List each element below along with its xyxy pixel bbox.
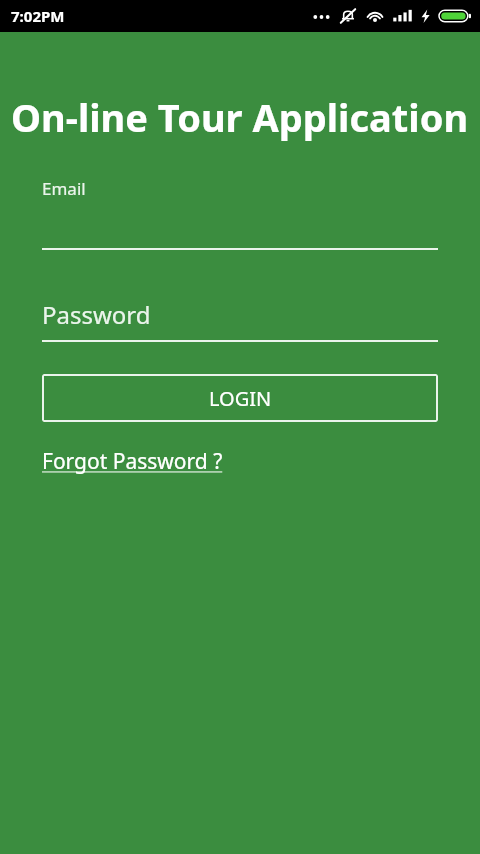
button[interactable]: Password (42, 294, 438, 342)
staticText: Email (42, 177, 86, 200)
staticText: 7:02PM (11, 6, 65, 26)
staticText: On-line Tour Application (11, 91, 469, 143)
button[interactable]: Email (42, 177, 438, 250)
staticText: LOGIN (209, 385, 272, 412)
staticText: Password (42, 298, 151, 331)
button[interactable]: Forgot Password ? (42, 447, 223, 476)
staticText: Forgot Password ? (42, 447, 223, 476)
button[interactable]: LOGIN (42, 374, 438, 422)
